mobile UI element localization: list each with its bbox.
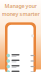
staticText: money smarter	[1, 10, 39, 18]
staticText: Manage your	[4, 2, 36, 9]
